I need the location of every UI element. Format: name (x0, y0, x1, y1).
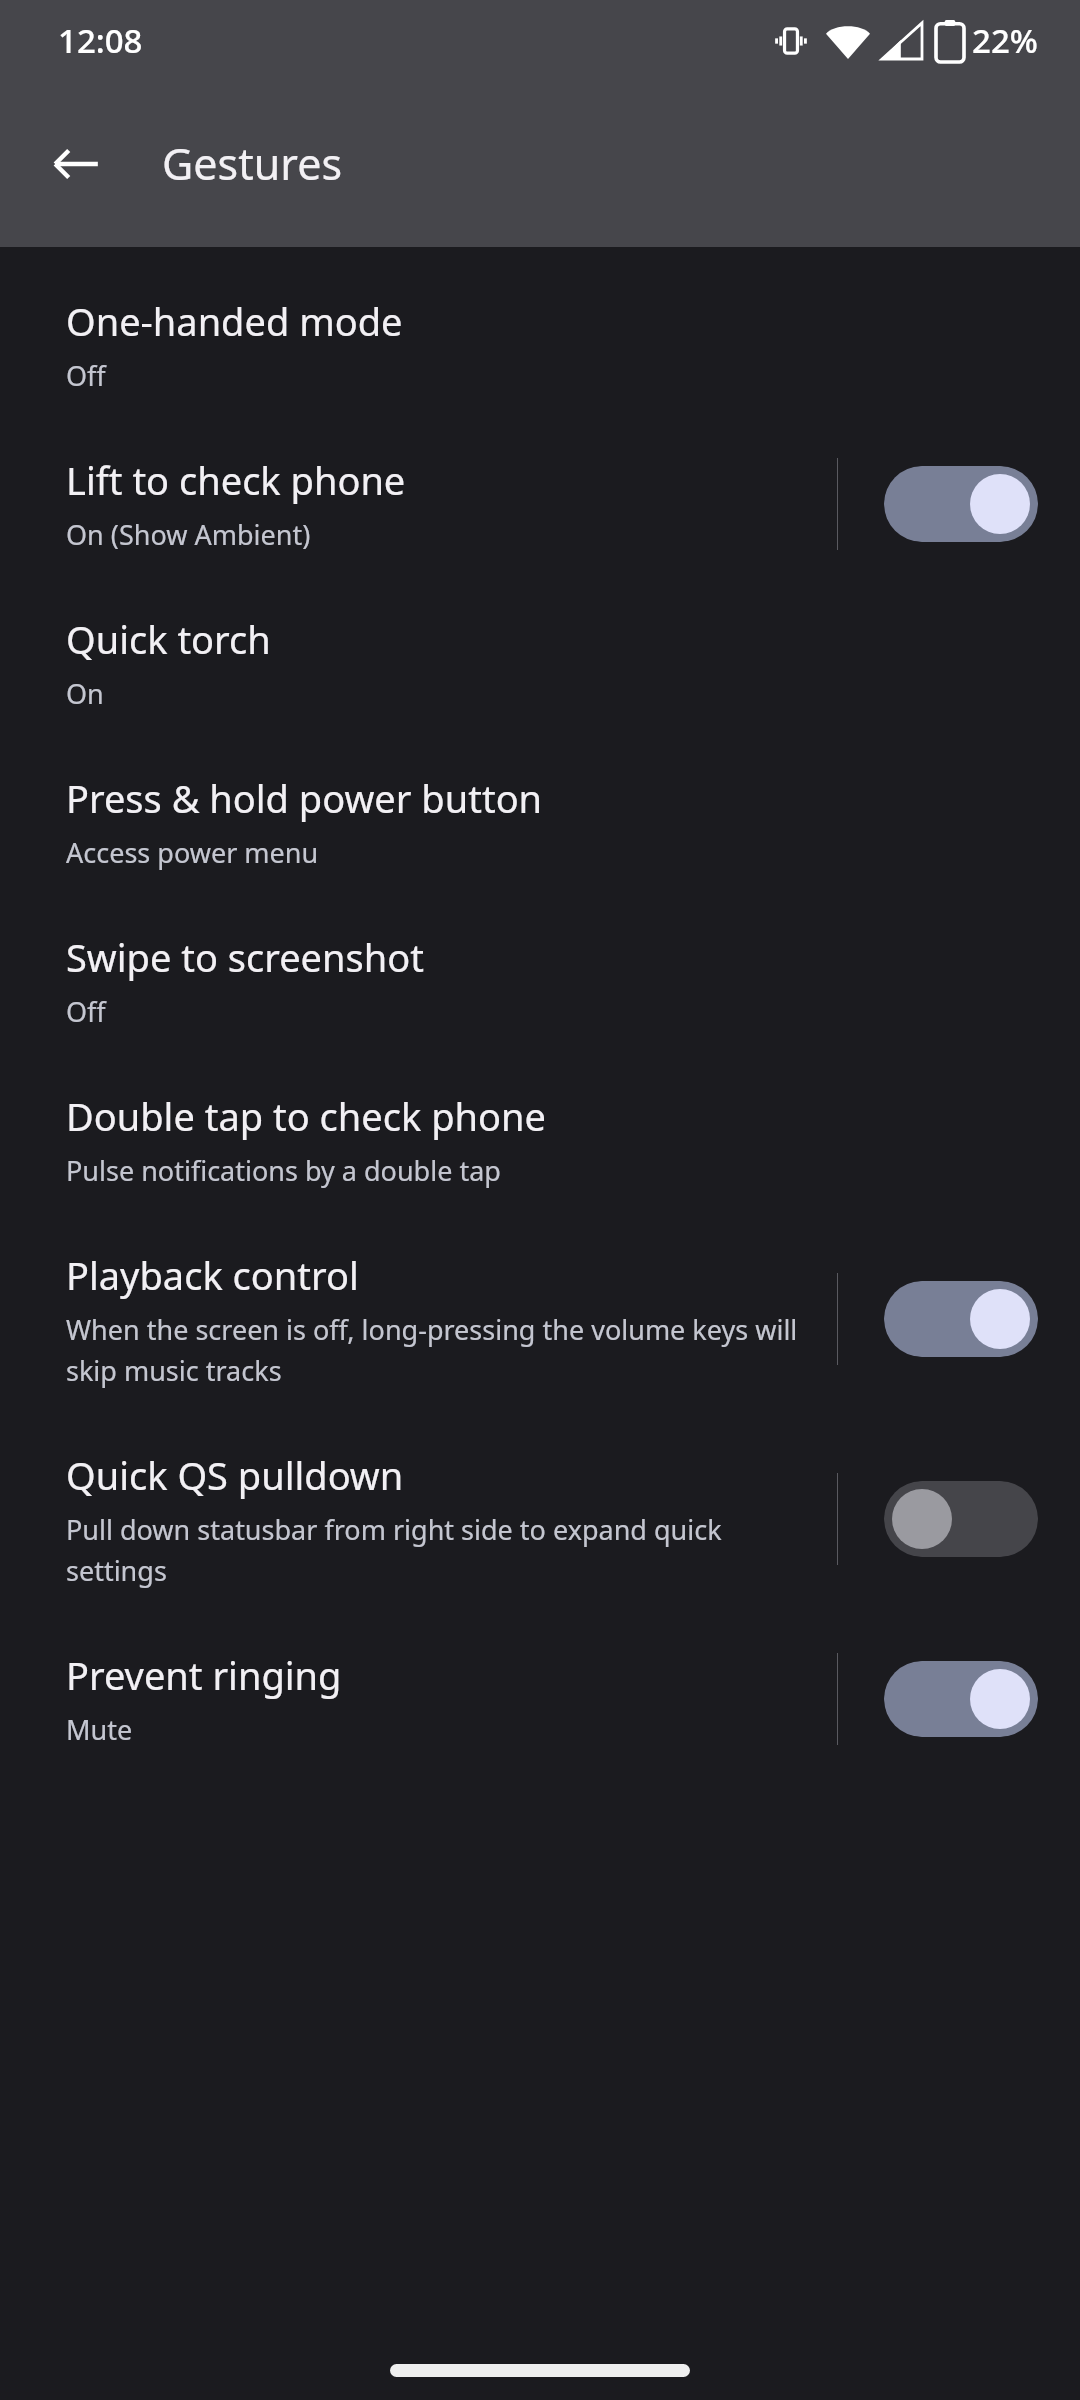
staticText: Press & hold power button (66, 772, 543, 824)
button[interactable]: Swipe to screenshot (0, 901, 1080, 1060)
button[interactable]: Prevent ringing on (884, 1661, 1038, 1737)
button[interactable]: Playback control (0, 1219, 1080, 1419)
staticText: When the screen is off, long-pressing th… (66, 1311, 813, 1389)
button[interactable]: Back (28, 116, 124, 212)
staticText: Mute (66, 1711, 133, 1748)
button[interactable]: Playback control on (884, 1281, 1038, 1357)
button[interactable]: Quick QS pulldown off (884, 1481, 1038, 1557)
staticText: Quick QS pulldown (66, 1449, 404, 1501)
button[interactable]: Double tap to check phone (0, 1060, 1080, 1219)
staticText: Double tap to check phone (66, 1090, 546, 1142)
button[interactable]: Quick torch (0, 583, 1080, 742)
staticText: Prevent ringing (66, 1649, 342, 1701)
button[interactable]: Prevent ringing (0, 1619, 1080, 1778)
staticText: Access power menu (66, 834, 319, 871)
staticText: On (Show Ambient) (66, 516, 311, 553)
staticText: Playback control (66, 1249, 359, 1301)
staticText: Gestures (162, 134, 342, 193)
staticText: 12:08 (58, 18, 143, 63)
staticText: Quick torch (66, 613, 271, 665)
button[interactable]: Lift to check phone (0, 424, 1080, 583)
button[interactable]: Press & hold power button (0, 742, 1080, 901)
staticText: Off (66, 993, 106, 1030)
staticText: Lift to check phone (66, 454, 406, 506)
staticText: Off (66, 357, 106, 394)
button[interactable]: One-handed mode (0, 265, 1080, 424)
button[interactable]: Lift to check phone on (884, 466, 1038, 542)
staticText: One-handed mode (66, 295, 403, 347)
staticText: On (66, 675, 104, 712)
staticText: Swipe to screenshot (66, 931, 424, 983)
staticText: Pull down statusbar from right side to e… (66, 1511, 813, 1589)
staticText: Pulse notifications by a double tap (66, 1152, 501, 1189)
button[interactable]: Quick QS pulldown (0, 1419, 1080, 1619)
staticText: 22% (972, 18, 1038, 63)
